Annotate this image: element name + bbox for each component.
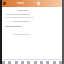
button[interactable] xyxy=(15,61,18,64)
button[interactable] xyxy=(59,61,62,64)
button[interactable] xyxy=(40,61,43,64)
button[interactable] xyxy=(34,61,37,64)
button[interactable] xyxy=(27,61,30,64)
button[interactable] xyxy=(21,61,24,64)
button[interactable] xyxy=(2,61,5,64)
button[interactable] xyxy=(46,61,49,64)
button[interactable]: Menu xyxy=(0,0,64,7)
button[interactable] xyxy=(8,61,11,64)
button[interactable] xyxy=(53,61,56,64)
